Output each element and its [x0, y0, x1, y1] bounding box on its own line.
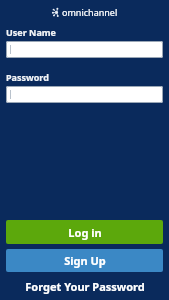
staticText: Forget Your Password [25, 279, 145, 294]
button[interactable]: Password input [6, 86, 163, 103]
staticText: omnichannel [62, 6, 118, 18]
button[interactable]: Log in [6, 220, 163, 244]
button[interactable]: Forget Your Password [6, 279, 163, 294]
staticText: Log in [68, 225, 102, 240]
staticText: Sign Up [64, 253, 106, 268]
staticText: User Name [6, 26, 56, 38]
button[interactable]: omnichannel logo [0, 6, 169, 18]
button[interactable]: User Name input [6, 41, 163, 58]
button[interactable]: Sign Up [6, 249, 163, 272]
staticText: Password [6, 71, 49, 83]
other: omnichannel logo [52, 8, 61, 17]
